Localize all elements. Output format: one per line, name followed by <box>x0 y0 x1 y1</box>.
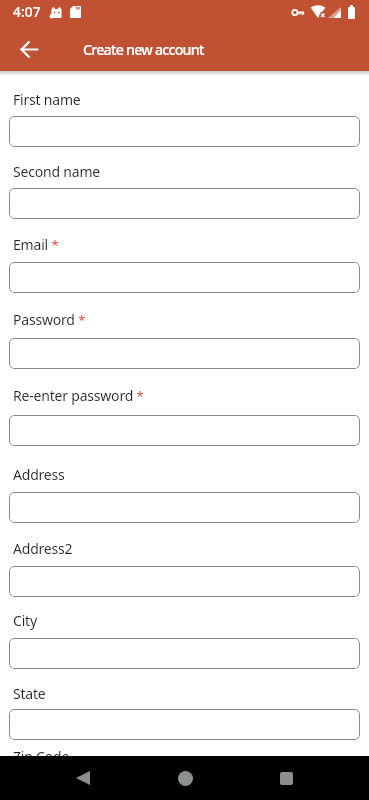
button[interactable] <box>63 756 103 800</box>
staticText: Create new account <box>83 40 204 59</box>
button[interactable] <box>9 338 360 369</box>
staticText: Address2 <box>13 539 73 558</box>
button[interactable] <box>9 566 360 597</box>
staticText: Password * <box>13 310 86 329</box>
button[interactable] <box>9 262 360 293</box>
staticText: Email * <box>13 235 59 254</box>
staticText: State <box>13 684 46 703</box>
button[interactable] <box>9 492 360 523</box>
button[interactable] <box>9 638 360 669</box>
staticText: Zip Code <box>13 747 70 766</box>
button[interactable] <box>9 188 360 219</box>
button[interactable] <box>9 116 360 147</box>
staticText: Second name <box>13 162 100 181</box>
staticText: First name <box>13 90 81 109</box>
staticText: Re-enter password * <box>13 386 144 405</box>
staticText: 4:07 <box>13 3 41 21</box>
button[interactable] <box>165 756 205 800</box>
button[interactable] <box>5 28 53 71</box>
button[interactable] <box>9 415 360 446</box>
button[interactable] <box>266 756 306 800</box>
staticText: City <box>13 611 37 630</box>
button[interactable] <box>9 709 360 740</box>
staticText: Address <box>13 465 65 484</box>
